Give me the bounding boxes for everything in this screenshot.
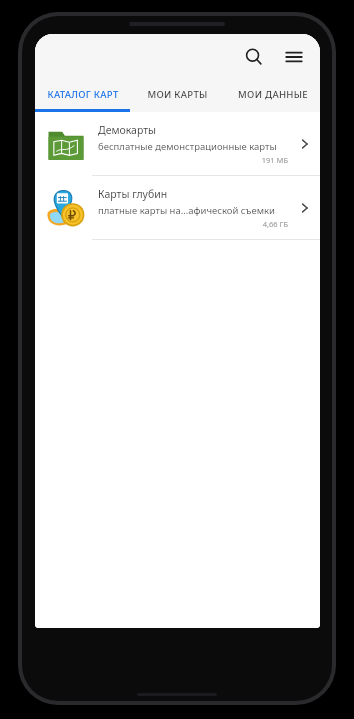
staticText: платные карты на…афической съемки <box>98 204 275 217</box>
staticText: 191 МБ <box>98 155 288 165</box>
staticText: 4,66 ГБ <box>98 219 288 229</box>
staticText: КАТАЛОГ КАРТ <box>47 88 119 101</box>
staticText: МОИ КАРТЫ <box>147 88 208 101</box>
button[interactable]: КАТАЛОГ КАРТ <box>35 79 130 109</box>
button[interactable]: Карты глубин <box>35 176 320 240</box>
button[interactable]: Menu <box>274 37 314 77</box>
button[interactable]: МОИ КАРТЫ <box>130 79 225 109</box>
button[interactable]: Search <box>234 37 274 77</box>
button[interactable]: Демокарты <box>35 112 320 176</box>
button[interactable]: МОИ ДАННЫЕ <box>225 79 320 109</box>
staticText: МОИ ДАННЫЕ <box>238 88 308 101</box>
staticText: Карты глубин <box>98 187 168 201</box>
staticText: бесплатные демонстрационные карты <box>98 140 277 153</box>
staticText: Демокарты <box>98 123 157 137</box>
